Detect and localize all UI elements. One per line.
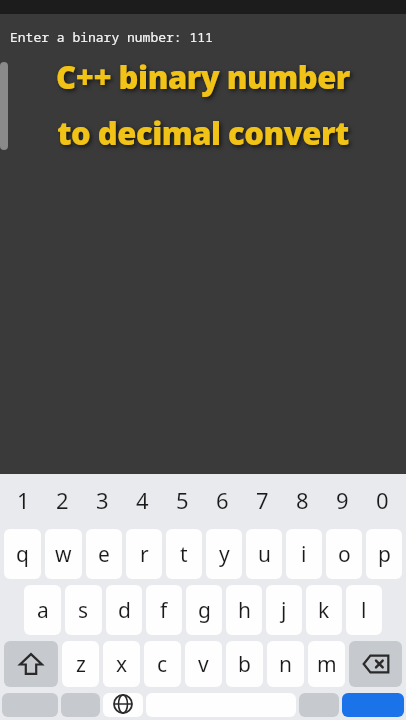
- staticText: 8: [296, 485, 309, 515]
- button[interactable]: k: [306, 585, 342, 635]
- button[interactable]: s: [65, 585, 102, 635]
- button[interactable]: 6: [202, 474, 242, 526]
- button[interactable]: a: [24, 585, 61, 635]
- staticText: 2: [56, 485, 69, 515]
- staticText: 5: [176, 485, 189, 515]
- staticText: n: [279, 650, 292, 679]
- staticText: C++ binary number: [56, 56, 350, 98]
- staticText: 3: [96, 485, 109, 515]
- button[interactable]: b: [226, 641, 263, 687]
- button[interactable]: 3: [82, 474, 122, 526]
- button[interactable]: c: [144, 641, 181, 687]
- staticText: g: [198, 596, 211, 625]
- staticText: to decimal convert: [57, 112, 349, 154]
- staticText: w: [55, 540, 72, 569]
- button[interactable]: t: [166, 529, 202, 579]
- staticText: Enter a binary number: 111: [10, 28, 213, 46]
- staticText: c: [157, 650, 168, 679]
- button[interactable]: g: [186, 585, 222, 635]
- staticText: x: [116, 650, 128, 679]
- button[interactable]: n: [267, 641, 304, 687]
- button[interactable]: z: [62, 641, 99, 687]
- staticText: s: [78, 596, 89, 625]
- staticText: h: [238, 596, 251, 625]
- button[interactable]: q: [4, 529, 41, 579]
- staticText: o: [338, 540, 351, 569]
- button[interactable]: Backspace: [349, 641, 402, 687]
- staticText: d: [118, 596, 131, 625]
- button[interactable]: Emoji: [61, 693, 100, 717]
- staticText: q: [16, 540, 29, 569]
- staticText: y: [219, 540, 230, 569]
- staticText: p: [378, 540, 391, 569]
- staticText: 4: [136, 485, 149, 515]
- staticText: i: [301, 540, 307, 569]
- staticText: a: [37, 596, 49, 625]
- button[interactable]: m: [308, 641, 345, 687]
- staticText: 0: [376, 485, 389, 515]
- button[interactable]: i: [286, 529, 322, 579]
- staticText: m: [317, 650, 337, 679]
- button[interactable]: 1: [4, 474, 43, 526]
- staticText: k: [318, 596, 330, 625]
- button[interactable]: Change language: [103, 693, 143, 717]
- button[interactable]: 8: [282, 474, 322, 526]
- staticText: j: [281, 596, 287, 625]
- staticText: r: [140, 540, 149, 569]
- staticText: 1: [17, 485, 30, 515]
- button[interactable]: 7: [242, 474, 282, 526]
- button[interactable]: h: [226, 585, 262, 635]
- staticText: 6: [216, 485, 229, 515]
- button[interactable]: f: [146, 585, 182, 635]
- button[interactable]: v: [185, 641, 222, 687]
- button[interactable]: 4: [122, 474, 162, 526]
- button[interactable]: o: [326, 529, 362, 579]
- button[interactable]: e: [86, 529, 122, 579]
- staticText: f: [160, 596, 168, 625]
- button[interactable]: Period: [299, 693, 339, 717]
- staticText: 9: [336, 485, 349, 515]
- staticText: t: [180, 540, 188, 569]
- staticText: e: [98, 540, 110, 569]
- button[interactable]: Symbols: [2, 693, 58, 717]
- button[interactable]: y: [206, 529, 242, 579]
- button[interactable]: Shift: [4, 641, 58, 687]
- button[interactable]: w: [45, 529, 82, 579]
- button[interactable]: l: [346, 585, 382, 635]
- staticText: l: [361, 596, 367, 625]
- button[interactable]: d: [106, 585, 142, 635]
- staticText: z: [76, 650, 86, 679]
- button[interactable]: x: [103, 641, 140, 687]
- staticText: 7: [256, 485, 269, 515]
- button[interactable]: 0: [362, 474, 402, 526]
- staticText: u: [258, 540, 271, 569]
- button[interactable]: r: [126, 529, 162, 579]
- button[interactable]: u: [246, 529, 282, 579]
- button[interactable]: p: [366, 529, 402, 579]
- button[interactable]: 2: [43, 474, 82, 526]
- button[interactable]: j: [266, 585, 302, 635]
- button[interactable]: Enter: [342, 693, 404, 717]
- button[interactable]: 5: [162, 474, 202, 526]
- staticText: b: [238, 650, 251, 679]
- button[interactable]: 9: [322, 474, 362, 526]
- staticText: v: [198, 650, 209, 679]
